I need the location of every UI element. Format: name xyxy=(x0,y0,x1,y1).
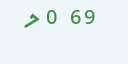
staticText: 6 xyxy=(70,3,82,30)
staticText: 9 xyxy=(84,3,96,30)
staticText: 0 xyxy=(46,3,58,30)
button[interactable]: Check xyxy=(0,0,128,64)
